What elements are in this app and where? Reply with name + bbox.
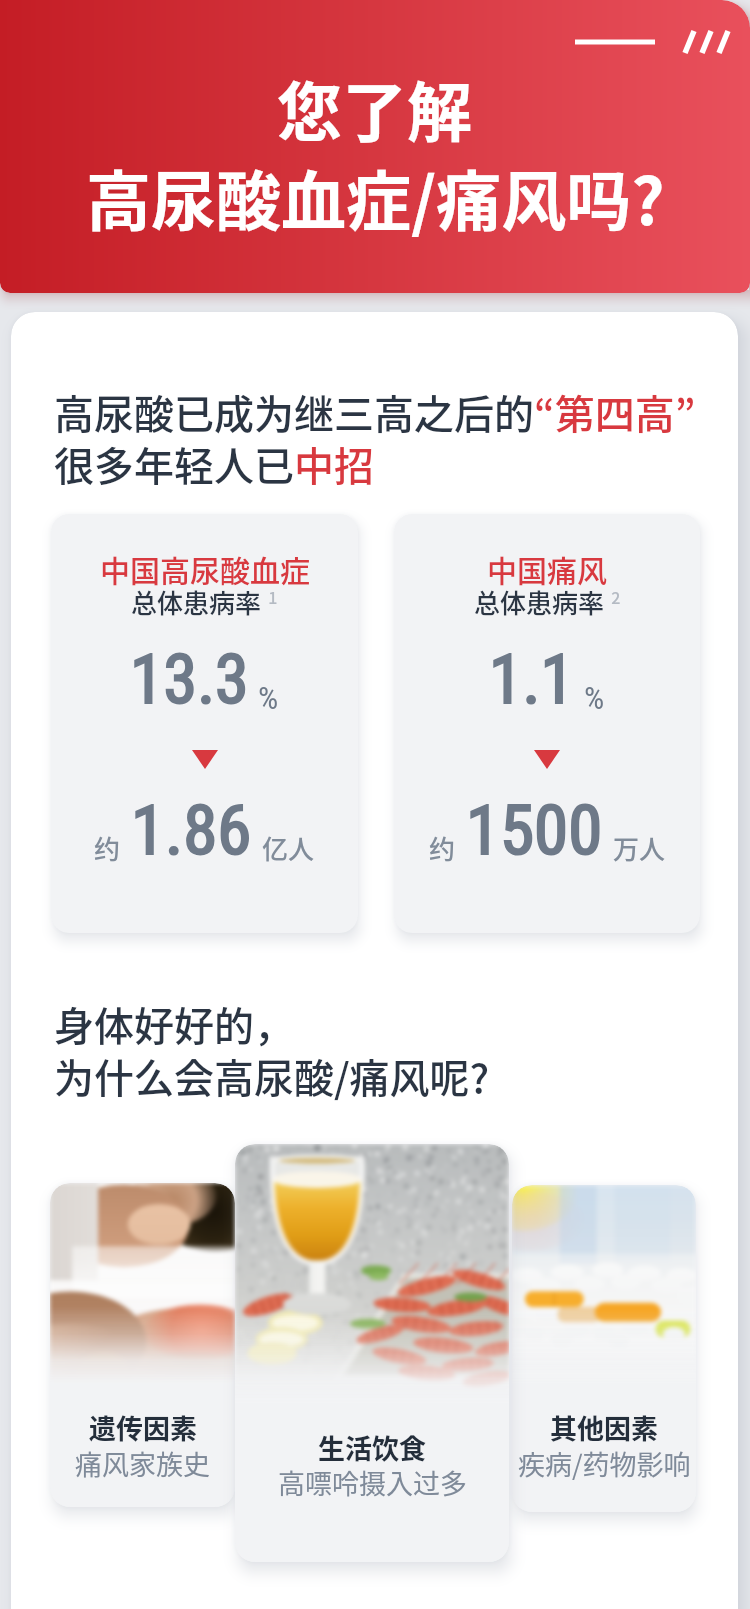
staticText: 遗传因素 bbox=[89, 1408, 197, 1447]
staticText: 高嘌呤摄入过多 bbox=[278, 1463, 467, 1502]
staticText: 疾病/药物影响 bbox=[518, 1444, 691, 1483]
button[interactable]: 中国高尿酸血症 bbox=[51, 514, 358, 933]
staticText: 总体患病率 2 bbox=[474, 583, 621, 621]
staticText: 约 bbox=[94, 829, 121, 867]
button[interactable]: 其他因素 bbox=[512, 1185, 696, 1512]
staticText: 为什么会高尿酸/痛风呢? bbox=[54, 1047, 490, 1105]
staticText: % bbox=[584, 679, 605, 717]
staticText: 总体患病率 1 bbox=[131, 583, 278, 621]
button[interactable]: 中国痛风 bbox=[394, 514, 700, 933]
staticText: 其他因素 bbox=[550, 1408, 658, 1447]
staticText: 1.1 bbox=[489, 640, 575, 720]
staticText: 您了解 bbox=[277, 61, 473, 155]
button[interactable]: 生活饮食 bbox=[235, 1144, 509, 1562]
staticText: 高尿酸已成为继三高之后的“第四高” bbox=[54, 383, 696, 441]
staticText: 万人 bbox=[613, 829, 666, 867]
staticText: 身体好好的， bbox=[54, 995, 294, 1053]
staticText: 1.86 bbox=[131, 790, 252, 871]
staticText: 亿人 bbox=[262, 829, 315, 867]
button[interactable]: 遗传因素 bbox=[50, 1183, 235, 1507]
staticText: 生活饮食 bbox=[318, 1428, 426, 1467]
staticText: 中国高尿酸血症 bbox=[100, 547, 310, 590]
staticText: 痛风家族史 bbox=[75, 1444, 210, 1483]
staticText: 很多年轻人已中招 bbox=[54, 435, 374, 493]
staticText: 约 bbox=[429, 829, 456, 867]
staticText: 13.3 bbox=[130, 640, 249, 720]
staticText: 高尿酸血症/痛风吗? bbox=[86, 150, 665, 244]
staticText: % bbox=[258, 679, 279, 717]
staticText: 1500 bbox=[466, 790, 603, 871]
staticText: 中国痛风 bbox=[487, 547, 607, 590]
